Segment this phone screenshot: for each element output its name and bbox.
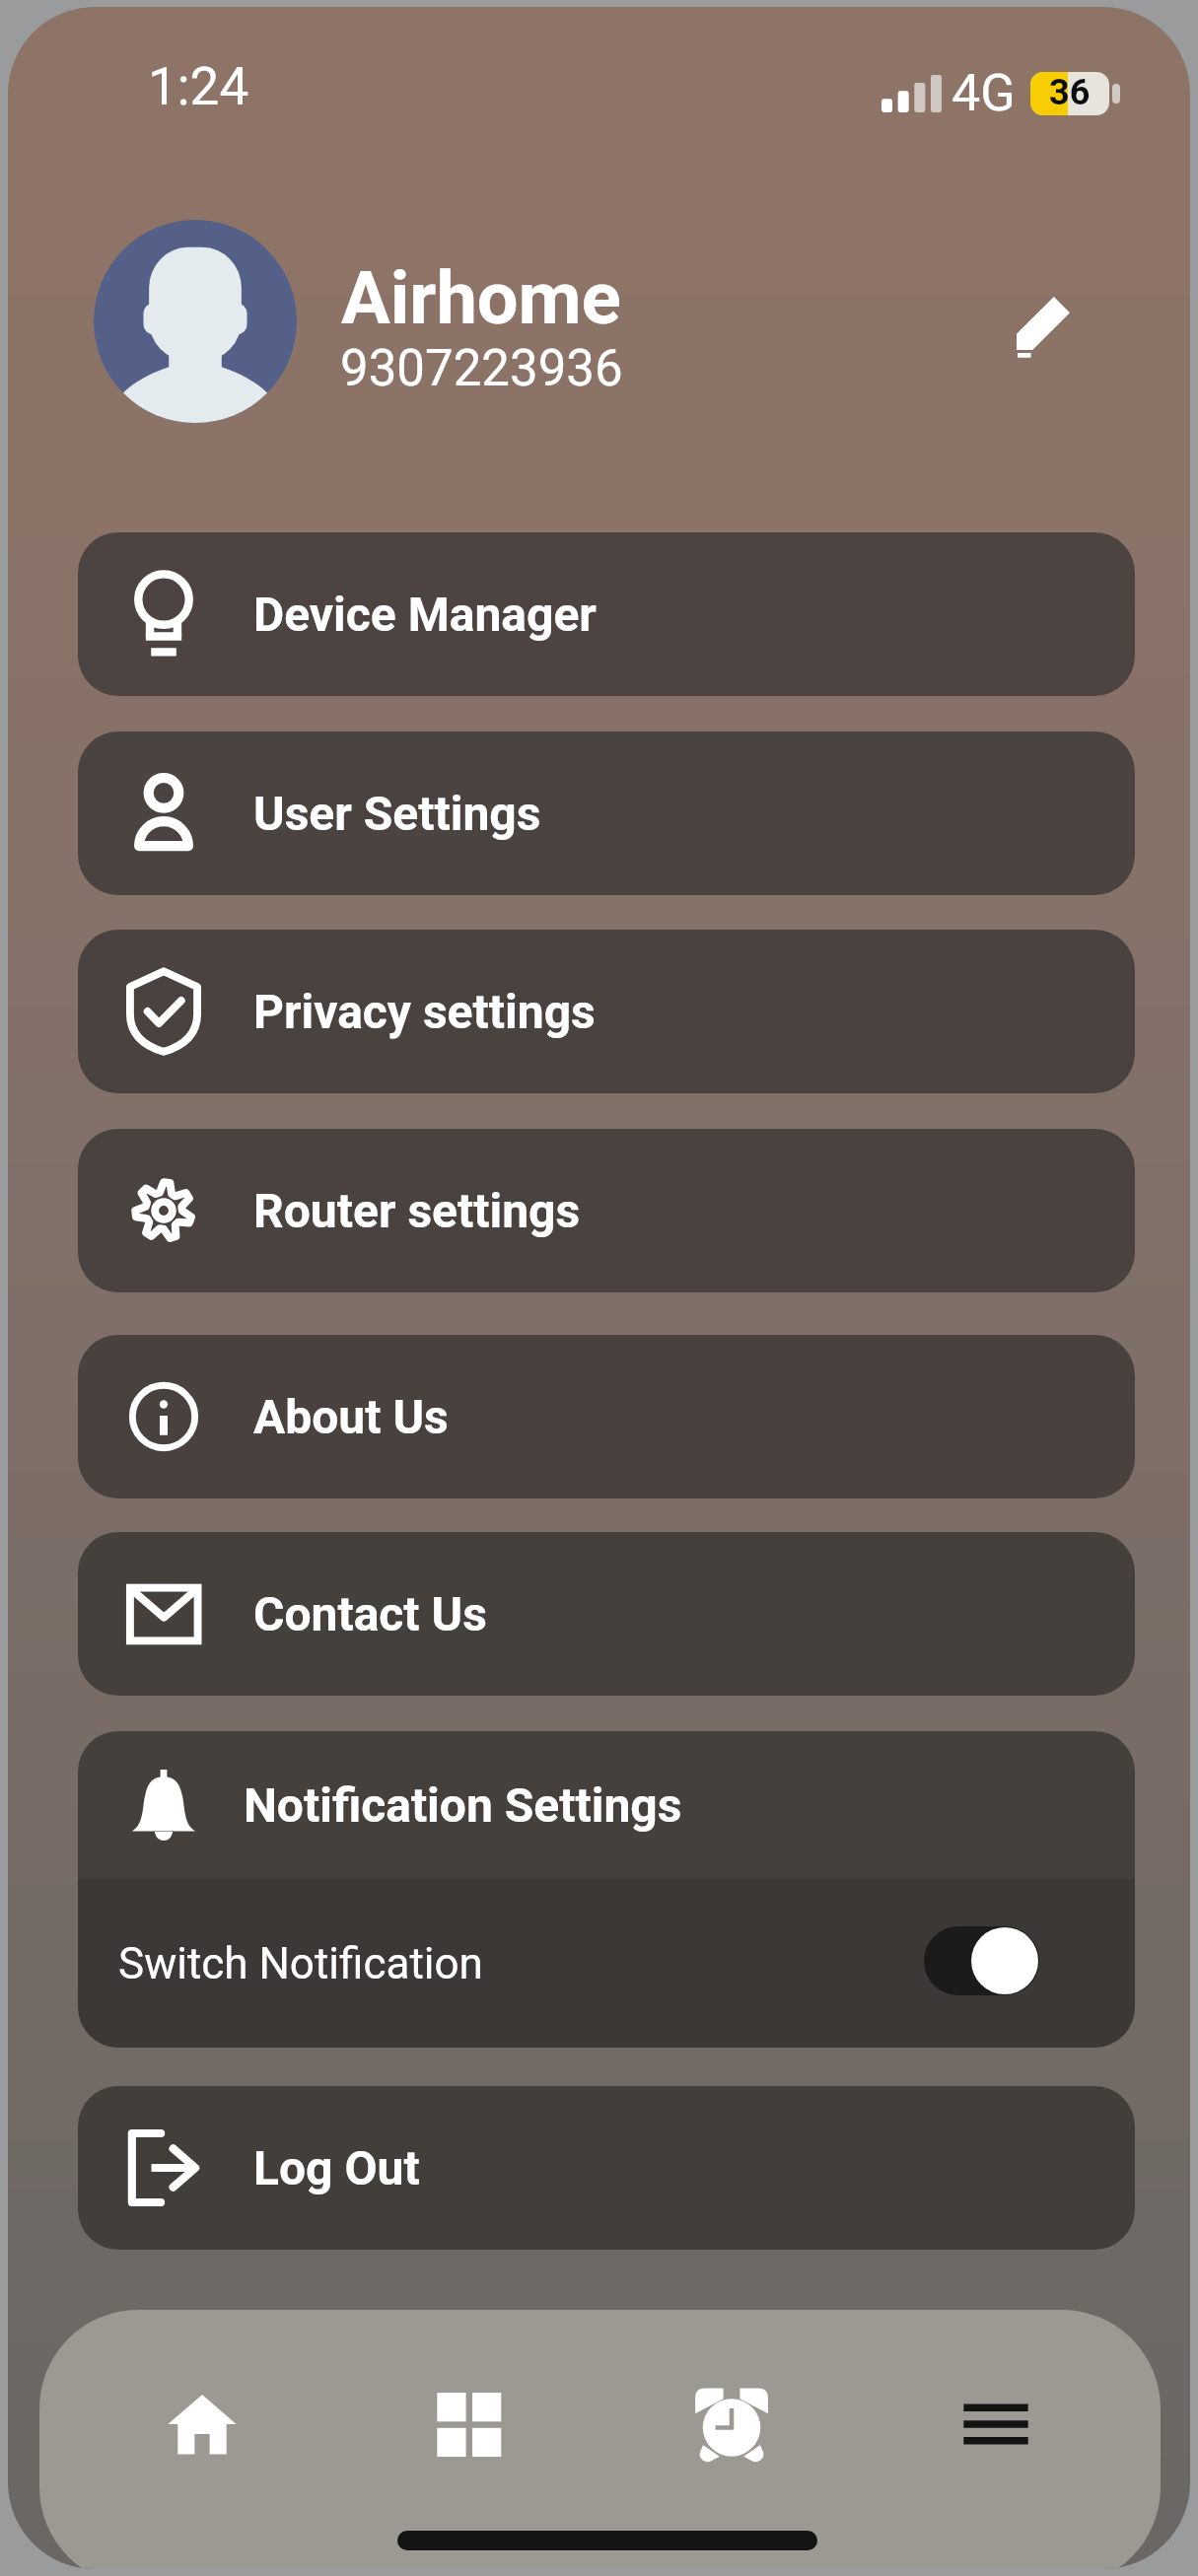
staticText: Router settings	[253, 1183, 581, 1238]
button[interactable]: Alarm	[661, 2351, 803, 2497]
staticText: Privacy settings	[253, 984, 596, 1039]
button[interactable]: Switch Notification	[78, 1879, 1135, 2048]
staticText: Airhome	[341, 255, 621, 341]
button[interactable]: Router settings	[78, 1129, 1135, 1292]
button[interactable]: User Settings	[78, 731, 1135, 895]
button[interactable]: Log Out	[78, 2086, 1135, 2250]
staticText: Switch Notification	[118, 1938, 483, 1989]
staticText: Log Out	[253, 2140, 420, 2195]
button[interactable]: Contact Us	[78, 1532, 1135, 1696]
staticText: About Us	[253, 1389, 449, 1444]
button[interactable]: About Us	[78, 1335, 1135, 1498]
button[interactable]: Edit profile	[984, 264, 1102, 383]
staticText: 9307223936	[340, 339, 623, 398]
staticText: User Settings	[253, 786, 541, 841]
staticText: Contact Us	[253, 1586, 487, 1641]
button[interactable]: Device Manager	[78, 532, 1135, 696]
staticText: Device Manager	[253, 587, 597, 642]
button[interactable]: Dashboard	[398, 2351, 540, 2497]
staticText: 1:24	[148, 56, 249, 117]
button[interactable]: Home	[131, 2351, 273, 2497]
button[interactable]: Menu	[925, 2351, 1067, 2497]
staticText: 4G	[951, 63, 1016, 123]
button[interactable]: Notification Settings	[78, 1731, 1135, 1879]
staticText: 36	[1049, 72, 1091, 113]
button[interactable]: Privacy settings	[78, 930, 1135, 1093]
staticText: Notification Settings	[244, 1777, 682, 1833]
